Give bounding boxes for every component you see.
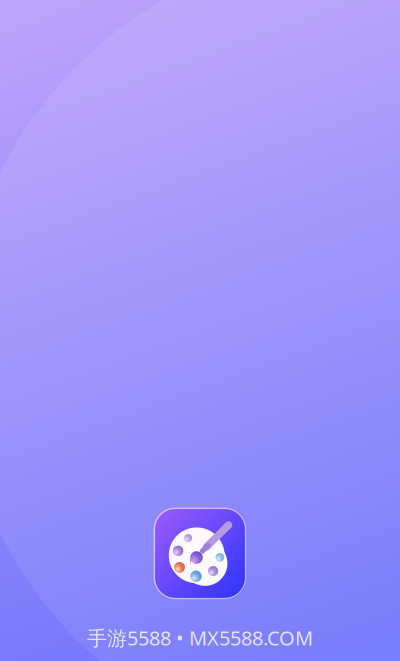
staticText: 手游5588 • MX5588.COM — [87, 624, 313, 651]
